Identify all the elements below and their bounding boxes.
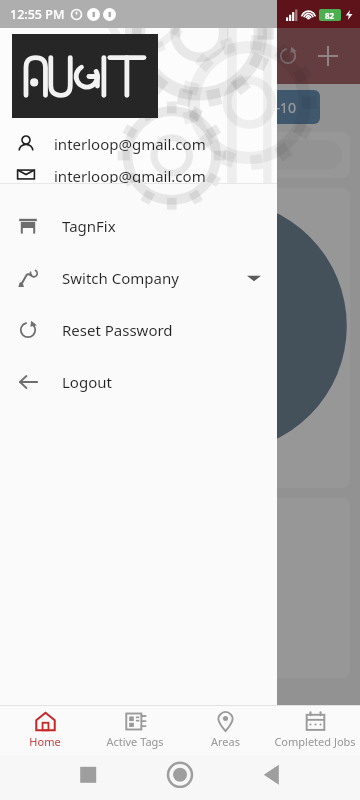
button[interactable]: TagnFix bbox=[0, 200, 277, 252]
button[interactable]: Reset Password bbox=[0, 304, 277, 356]
button[interactable]: 2024-02-10 bbox=[200, 90, 320, 124]
button[interactable] bbox=[0, 0, 360, 800]
button[interactable]: Refresh bbox=[268, 36, 308, 76]
staticText: TagnFix bbox=[62, 216, 116, 236]
staticText: 2024-02-10 bbox=[223, 98, 297, 117]
staticText: interloop@gmail.com bbox=[54, 134, 206, 154]
staticText: Switch Company bbox=[62, 268, 179, 288]
button[interactable]: Add bbox=[308, 36, 348, 76]
staticText: Active Tags bbox=[106, 734, 164, 749]
button[interactable]: Home bbox=[0, 706, 90, 755]
button[interactable]: Active Tags bbox=[90, 706, 180, 755]
staticText: 82 bbox=[325, 10, 335, 21]
button[interactable]: Switch Company bbox=[0, 252, 277, 304]
button[interactable]: Logout bbox=[0, 356, 277, 408]
staticText: Areas bbox=[211, 734, 240, 749]
button[interactable]: Completed Jobs bbox=[270, 706, 360, 755]
staticText: Reset Password bbox=[62, 320, 173, 340]
staticText: Home bbox=[29, 734, 61, 749]
staticText: Critical bbox=[219, 146, 261, 164]
button[interactable]: Critical bbox=[138, 140, 342, 170]
staticText: Logout bbox=[62, 372, 112, 392]
staticText: Total bbox=[58, 146, 88, 164]
staticText: 12:55 PM bbox=[10, 6, 65, 23]
staticText: Completed Jobs bbox=[274, 734, 356, 749]
button[interactable]: Total bbox=[18, 140, 128, 170]
staticText: interloop@gmail.com bbox=[54, 166, 206, 183]
button[interactable]: Areas bbox=[180, 706, 270, 755]
